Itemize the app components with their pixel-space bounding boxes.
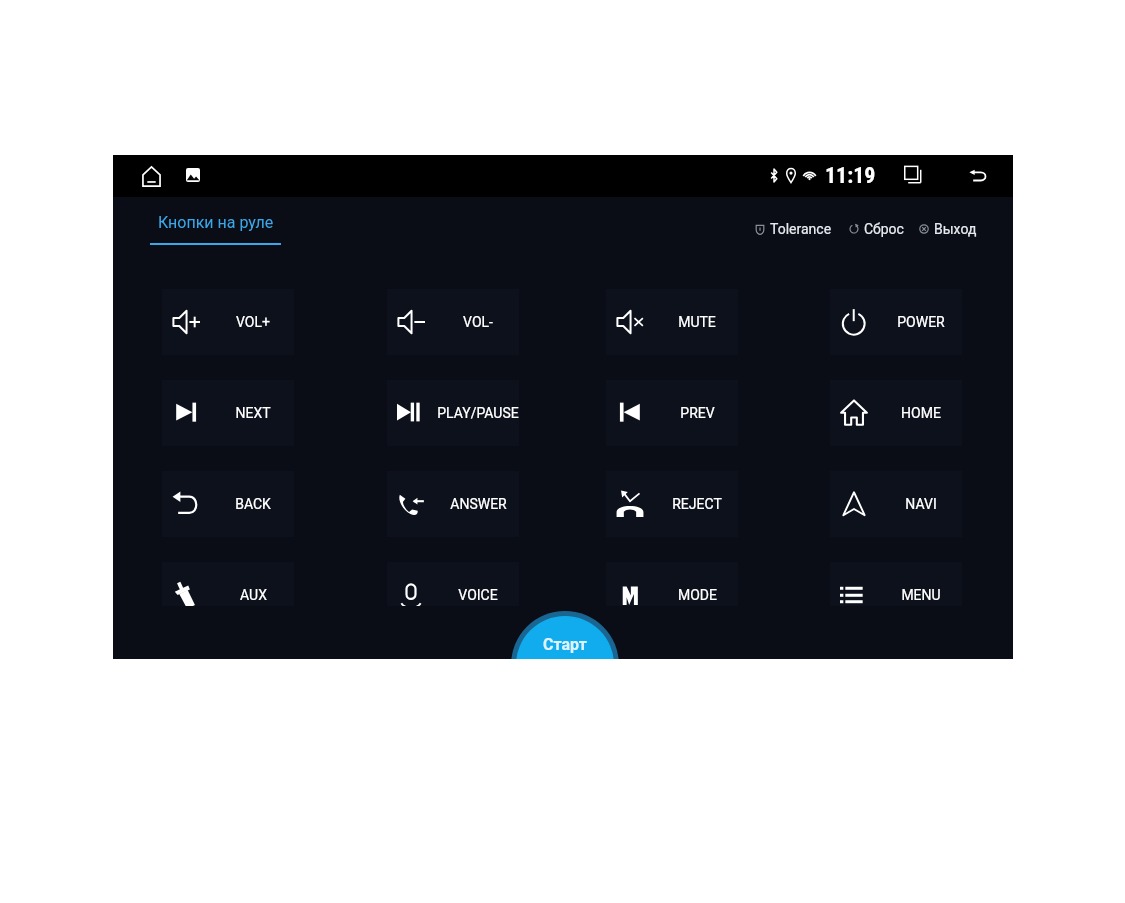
button[interactable]: MENU (830, 562, 962, 606)
staticText: ANSWER (450, 496, 507, 512)
button[interactable]: Старт (511, 611, 619, 659)
button[interactable]: Tolerance (755, 221, 832, 237)
button[interactable]: NEXT (162, 380, 294, 446)
button[interactable]: Back (962, 160, 994, 192)
staticText: VOL- (463, 314, 493, 330)
staticText: PREV (680, 405, 715, 421)
staticText: Выход (934, 221, 977, 237)
button[interactable]: AUX (162, 562, 294, 606)
button[interactable]: Кнопки на руле (150, 213, 281, 245)
staticText: MENU (901, 587, 941, 603)
button[interactable]: Выход (919, 221, 977, 237)
button[interactable]: MODE (606, 562, 738, 606)
button[interactable]: ANSWER (387, 471, 519, 537)
staticText: MODE (678, 587, 717, 603)
button[interactable]: REJECT (606, 471, 738, 537)
button[interactable]: Gallery (179, 161, 207, 189)
button[interactable]: Сброс (849, 221, 904, 237)
button[interactable]: Home (133, 158, 169, 194)
staticText: Tolerance (770, 221, 832, 237)
button[interactable]: Recents (897, 159, 929, 191)
button[interactable]: NAVI (830, 471, 962, 537)
staticText: PLAY/PAUSE (437, 405, 519, 421)
staticText: VOICE (458, 587, 498, 603)
staticText: REJECT (672, 496, 722, 512)
staticText: BACK (235, 496, 271, 512)
staticText: Старт (543, 635, 587, 654)
staticText: AUX (240, 587, 267, 603)
staticText: 11:19 (825, 163, 876, 189)
staticText: POWER (897, 314, 945, 330)
staticText: NAVI (905, 496, 937, 512)
button[interactable]: PLAY/PAUSE (387, 380, 519, 446)
button[interactable]: PREV (606, 380, 738, 446)
button[interactable]: VOL+ (162, 289, 294, 355)
staticText: VOL+ (236, 314, 270, 330)
button[interactable]: VOICE (387, 562, 519, 606)
button[interactable]: HOME (830, 380, 962, 446)
staticText: HOME (901, 405, 941, 421)
staticText: NEXT (235, 405, 271, 421)
staticText: Сброс (864, 221, 904, 237)
button[interactable]: BACK (162, 471, 294, 537)
staticText: MUTE (678, 314, 716, 330)
staticText: Кнопки на руле (158, 213, 274, 232)
button[interactable]: MUTE (606, 289, 738, 355)
button[interactable]: POWER (830, 289, 962, 355)
button[interactable]: VOL- (387, 289, 519, 355)
